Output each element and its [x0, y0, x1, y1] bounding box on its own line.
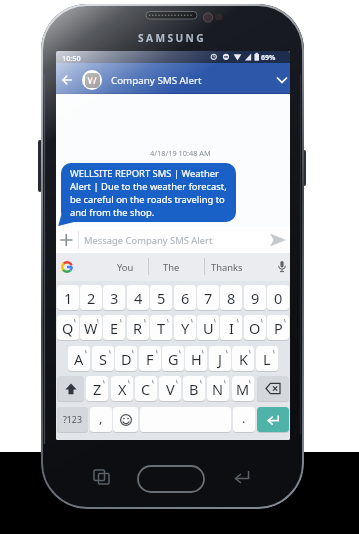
button[interactable]: WELLSITE REPORT SMS | Weather Alert | Du… [61, 163, 236, 222]
staticText: Q [62, 318, 74, 338]
staticText: L [263, 349, 271, 369]
button[interactable]: A [68, 346, 90, 371]
button[interactable]: 2 [80, 285, 102, 310]
button[interactable]: Z [86, 376, 108, 401]
button[interactable]: 7 [197, 285, 219, 310]
button[interactable] [56, 63, 290, 94]
staticText: I [229, 318, 234, 338]
staticText: V [166, 379, 175, 399]
staticText: Y [181, 318, 190, 338]
staticText: D [121, 349, 132, 369]
button[interactable]: . [233, 407, 255, 432]
button[interactable] [269, 233, 287, 247]
staticText: 6 [181, 288, 190, 308]
staticText: 1 [64, 288, 73, 308]
button[interactable] [232, 465, 253, 486]
button[interactable]: C [135, 376, 157, 401]
button[interactable] [61, 261, 73, 273]
button[interactable]: G [162, 346, 184, 371]
staticText: 9 [251, 288, 260, 308]
button[interactable]: Thanks [207, 260, 247, 274]
button[interactable]: Q [57, 315, 79, 340]
staticText: ?123 [63, 414, 82, 426]
button[interactable]: The [151, 260, 191, 274]
button[interactable]: E [103, 315, 125, 340]
staticText: Z [93, 379, 102, 399]
staticText: 2 [87, 288, 96, 308]
staticText: 3 [110, 288, 119, 308]
button[interactable] [138, 466, 204, 492]
button[interactable]: T [150, 315, 172, 340]
button[interactable] [113, 407, 138, 432]
button[interactable]: W [80, 315, 102, 340]
staticText: A [74, 349, 84, 369]
button[interactable]: D [115, 346, 137, 371]
staticText: R [133, 318, 143, 338]
staticText: O [249, 318, 261, 338]
staticText: F [146, 349, 154, 369]
staticText: 69% [261, 53, 276, 63]
button[interactable] [89, 465, 110, 486]
button[interactable]: U [197, 315, 219, 340]
button[interactable]: H [185, 346, 207, 371]
button[interactable]: N [207, 376, 229, 401]
button[interactable] [277, 260, 287, 274]
button[interactable]: K [232, 346, 254, 371]
button[interactable]: I [220, 315, 242, 340]
button[interactable] [275, 74, 289, 86]
button[interactable]: ?123 [57, 407, 88, 432]
staticText: 4/18/19 10:48 AM [150, 148, 211, 158]
button[interactable]: B [183, 376, 205, 401]
button[interactable]: J [209, 346, 231, 371]
staticText: G [168, 349, 179, 369]
button[interactable]: You [105, 260, 145, 274]
staticText: E [110, 318, 119, 338]
staticText: S [99, 349, 107, 369]
staticText: Message Company SMS Alert [84, 234, 213, 247]
button[interactable]: P [267, 315, 289, 340]
staticText: You [117, 261, 134, 274]
staticText: M [236, 379, 250, 399]
staticText: Thanks [211, 261, 243, 274]
button[interactable]: 3 [103, 285, 125, 310]
staticText: T [157, 318, 166, 338]
button[interactable] [59, 233, 74, 247]
button[interactable]: O [244, 315, 266, 340]
button[interactable]: R [127, 315, 149, 340]
button[interactable] [257, 376, 289, 401]
staticText: 5 [157, 288, 166, 308]
button[interactable]: V [159, 376, 181, 401]
button[interactable]: 8 [220, 285, 242, 310]
button[interactable]: 0 [267, 285, 289, 310]
button[interactable]: 6 [174, 285, 196, 310]
button[interactable] [257, 407, 289, 432]
staticText: P [274, 318, 283, 338]
button[interactable]: S [92, 346, 114, 371]
button[interactable]: Y [174, 315, 196, 340]
staticText: H [191, 349, 202, 369]
staticText: The [163, 261, 180, 274]
staticText: J [218, 349, 222, 369]
staticText: 7 [204, 288, 213, 308]
staticText: X [118, 379, 127, 399]
button[interactable]: 5 [150, 285, 172, 310]
button[interactable]: L [256, 346, 278, 371]
staticText: U [203, 318, 214, 338]
button[interactable] [57, 376, 84, 401]
staticText: , [99, 409, 103, 427]
button[interactable] [61, 74, 73, 86]
button[interactable]: M [232, 376, 254, 401]
staticText: N [212, 379, 224, 399]
button[interactable]: 9 [244, 285, 266, 310]
staticText: Company SMS Alert [111, 74, 202, 87]
staticText: SAMSUNG [138, 31, 207, 44]
button[interactable] [82, 70, 102, 90]
staticText: B [189, 379, 199, 399]
button[interactable]: , [90, 407, 112, 432]
button[interactable]: X [111, 376, 133, 401]
button[interactable]: F [139, 346, 161, 371]
button[interactable]: 4 [127, 285, 149, 310]
button[interactable]: 1 [57, 285, 79, 310]
staticText: C [141, 379, 151, 399]
